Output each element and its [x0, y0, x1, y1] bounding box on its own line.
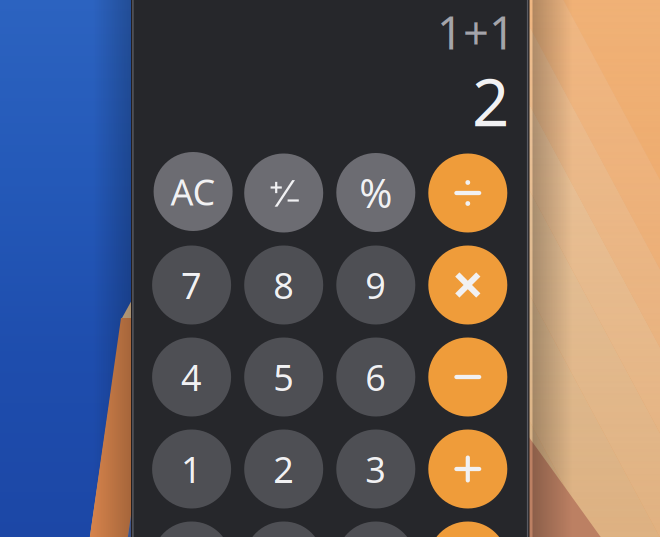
button[interactable]: Divide — [428, 153, 507, 232]
staticText: 9 — [365, 261, 386, 309]
staticText: 3 — [365, 445, 386, 493]
button[interactable]: Delete — [336, 521, 415, 537]
button[interactable]: 6 — [336, 337, 415, 416]
staticText: 2 — [273, 445, 294, 493]
staticText: 6 — [365, 353, 386, 401]
staticText: 4 — [181, 353, 202, 401]
button[interactable]: 1 — [152, 429, 231, 508]
button[interactable]: Equals — [428, 521, 507, 537]
staticText: % — [359, 166, 392, 219]
button[interactable]: All Clear — [154, 152, 233, 231]
staticText: 1 — [181, 445, 202, 493]
button[interactable]: Add — [428, 429, 507, 508]
button[interactable]: 2 — [244, 429, 323, 508]
button[interactable]: Decimal Point — [244, 521, 323, 537]
button[interactable]: 3 — [336, 429, 415, 508]
button[interactable]: Multiply — [428, 245, 507, 324]
button[interactable]: 7 — [152, 245, 231, 324]
staticText: 7 — [181, 261, 202, 309]
button[interactable]: Plus Minus — [244, 153, 323, 232]
staticText: AC — [171, 168, 216, 215]
staticText: 8 — [273, 261, 294, 309]
button[interactable]: Percent — [336, 153, 415, 232]
button[interactable]: 0 — [152, 521, 231, 537]
staticText: 5 — [273, 353, 294, 401]
button[interactable]: Subtract — [428, 337, 507, 416]
button[interactable]: 8 — [244, 245, 323, 324]
button[interactable]: 5 — [244, 337, 323, 416]
button[interactable]: 4 — [152, 337, 231, 416]
staticText: 1+1 — [437, 2, 515, 62]
button[interactable]: 9 — [336, 245, 415, 324]
staticText: 2 — [472, 58, 509, 144]
